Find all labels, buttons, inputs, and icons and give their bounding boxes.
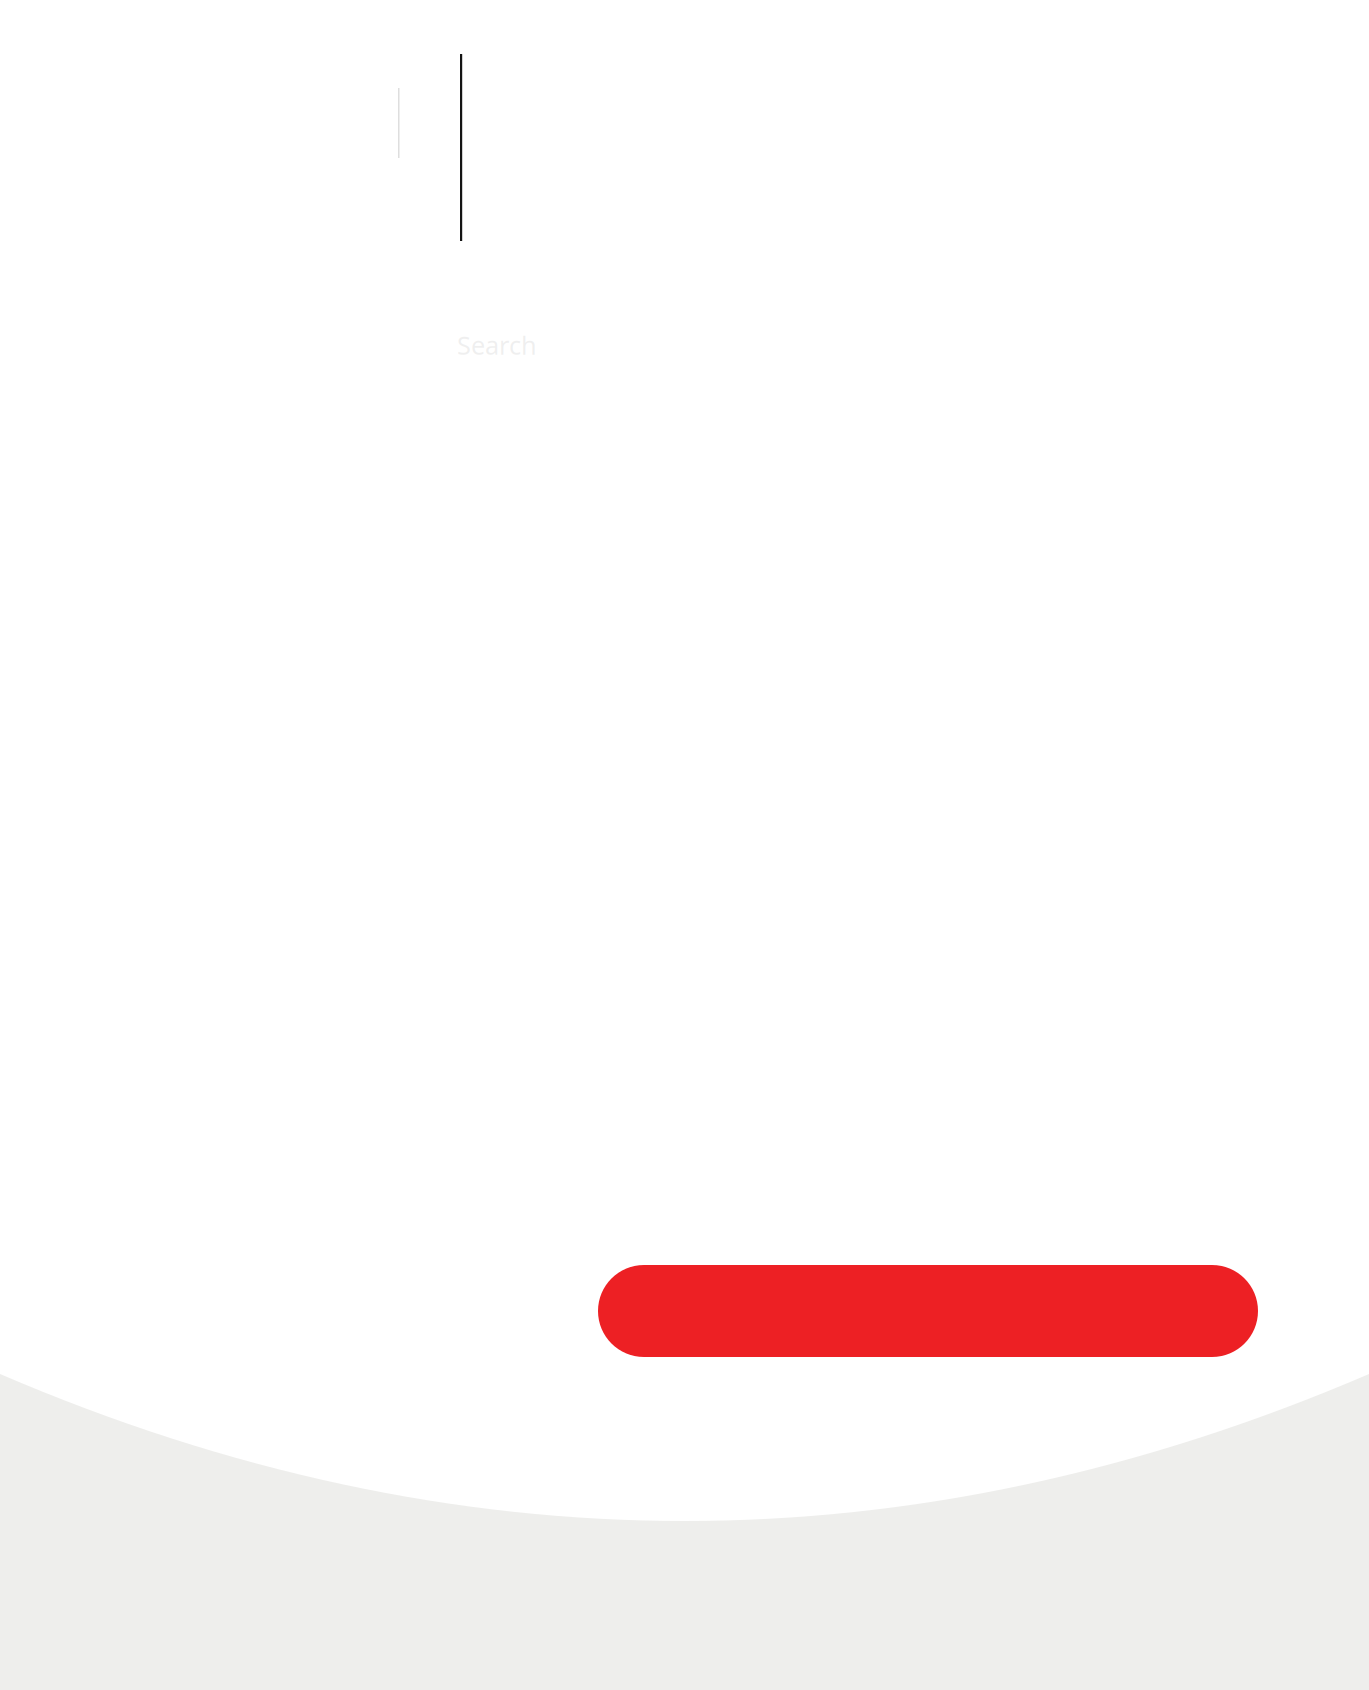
staticText: Search: [457, 328, 537, 362]
button[interactable]: Continue: [598, 1265, 1258, 1357]
